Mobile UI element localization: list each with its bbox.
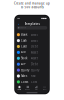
button[interactable]: Bank: [15, 32, 49, 38]
staticText: Home: [17, 89, 21, 90]
staticText: 9:41: [17, 18, 20, 19]
staticText: Bank: [21, 33, 27, 36]
staticText: A/R: [21, 51, 26, 54]
staticText: Create and manage up: [14, 2, 50, 5]
button[interactable]: Stats: [32, 85, 40, 90]
staticText: Card: [21, 45, 27, 48]
staticText: Sales: [21, 74, 27, 78]
button[interactable]: Card: [15, 43, 49, 49]
staticText: More: [43, 89, 47, 90]
button[interactable]: A/R: [15, 49, 49, 55]
button[interactable]: Costs: [15, 79, 49, 85]
staticText: Asset: [31, 33, 38, 36]
staticText: ‹: [18, 21, 19, 26]
staticText: Stock: [21, 56, 27, 60]
staticText: Search: [20, 27, 26, 29]
staticText: Debt: [31, 45, 38, 48]
staticText: Books: [25, 89, 30, 90]
staticText: Equity: [31, 68, 39, 72]
staticText: Asset: [31, 51, 38, 54]
staticText: A/P: [21, 62, 26, 66]
button[interactable]: More: [40, 85, 49, 90]
staticText: Costs: [21, 80, 28, 84]
staticText: Rev.: [31, 74, 36, 78]
button[interactable]: Books: [24, 85, 32, 90]
button[interactable]: Back: [16, 22, 20, 26]
staticText: Templates: [24, 22, 39, 26]
button[interactable]: Cash: [15, 38, 49, 43]
button[interactable]: Home: [15, 85, 24, 90]
button[interactable]: Sales: [15, 73, 49, 79]
button[interactable]: Stock: [15, 55, 49, 61]
button[interactable]: A/P: [15, 61, 49, 67]
staticText: Debt: [31, 62, 38, 66]
staticText: Cost: [31, 80, 37, 84]
button[interactable]: Equity: [15, 67, 49, 73]
staticText: Equity: [21, 68, 29, 72]
button[interactable]: Search: [15, 26, 49, 32]
staticText: Cash: [21, 39, 27, 42]
staticText: Stats: [35, 89, 38, 90]
staticText: to 500 accounts: [20, 5, 43, 9]
staticText: Asset: [31, 56, 38, 60]
staticText: Asset: [31, 39, 38, 42]
